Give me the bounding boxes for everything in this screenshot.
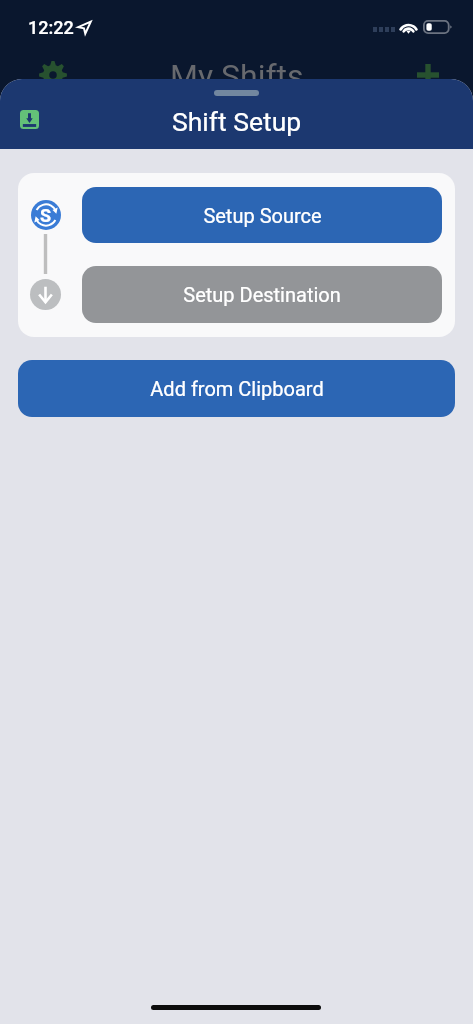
button[interactable]: Setup destination <box>30 279 61 310</box>
button[interactable]: Setup source <box>31 200 61 230</box>
staticText: S <box>40 205 52 226</box>
staticText: My Shifts <box>170 57 304 95</box>
staticText: Setup Source <box>203 204 322 227</box>
button[interactable]: Settings <box>39 61 67 89</box>
staticText: Shift Setup <box>172 106 302 137</box>
button[interactable]: Add shift <box>417 64 439 86</box>
button[interactable]: Setup Destination <box>82 266 442 323</box>
button[interactable]: Import <box>20 110 39 129</box>
button[interactable]: Setup Source <box>82 187 442 243</box>
button[interactable]: Add from Clipboard <box>18 360 455 417</box>
staticText: 12:22 <box>28 17 74 38</box>
staticText: Add from Clipboard <box>150 377 324 400</box>
staticText: Setup Destination <box>183 283 341 306</box>
